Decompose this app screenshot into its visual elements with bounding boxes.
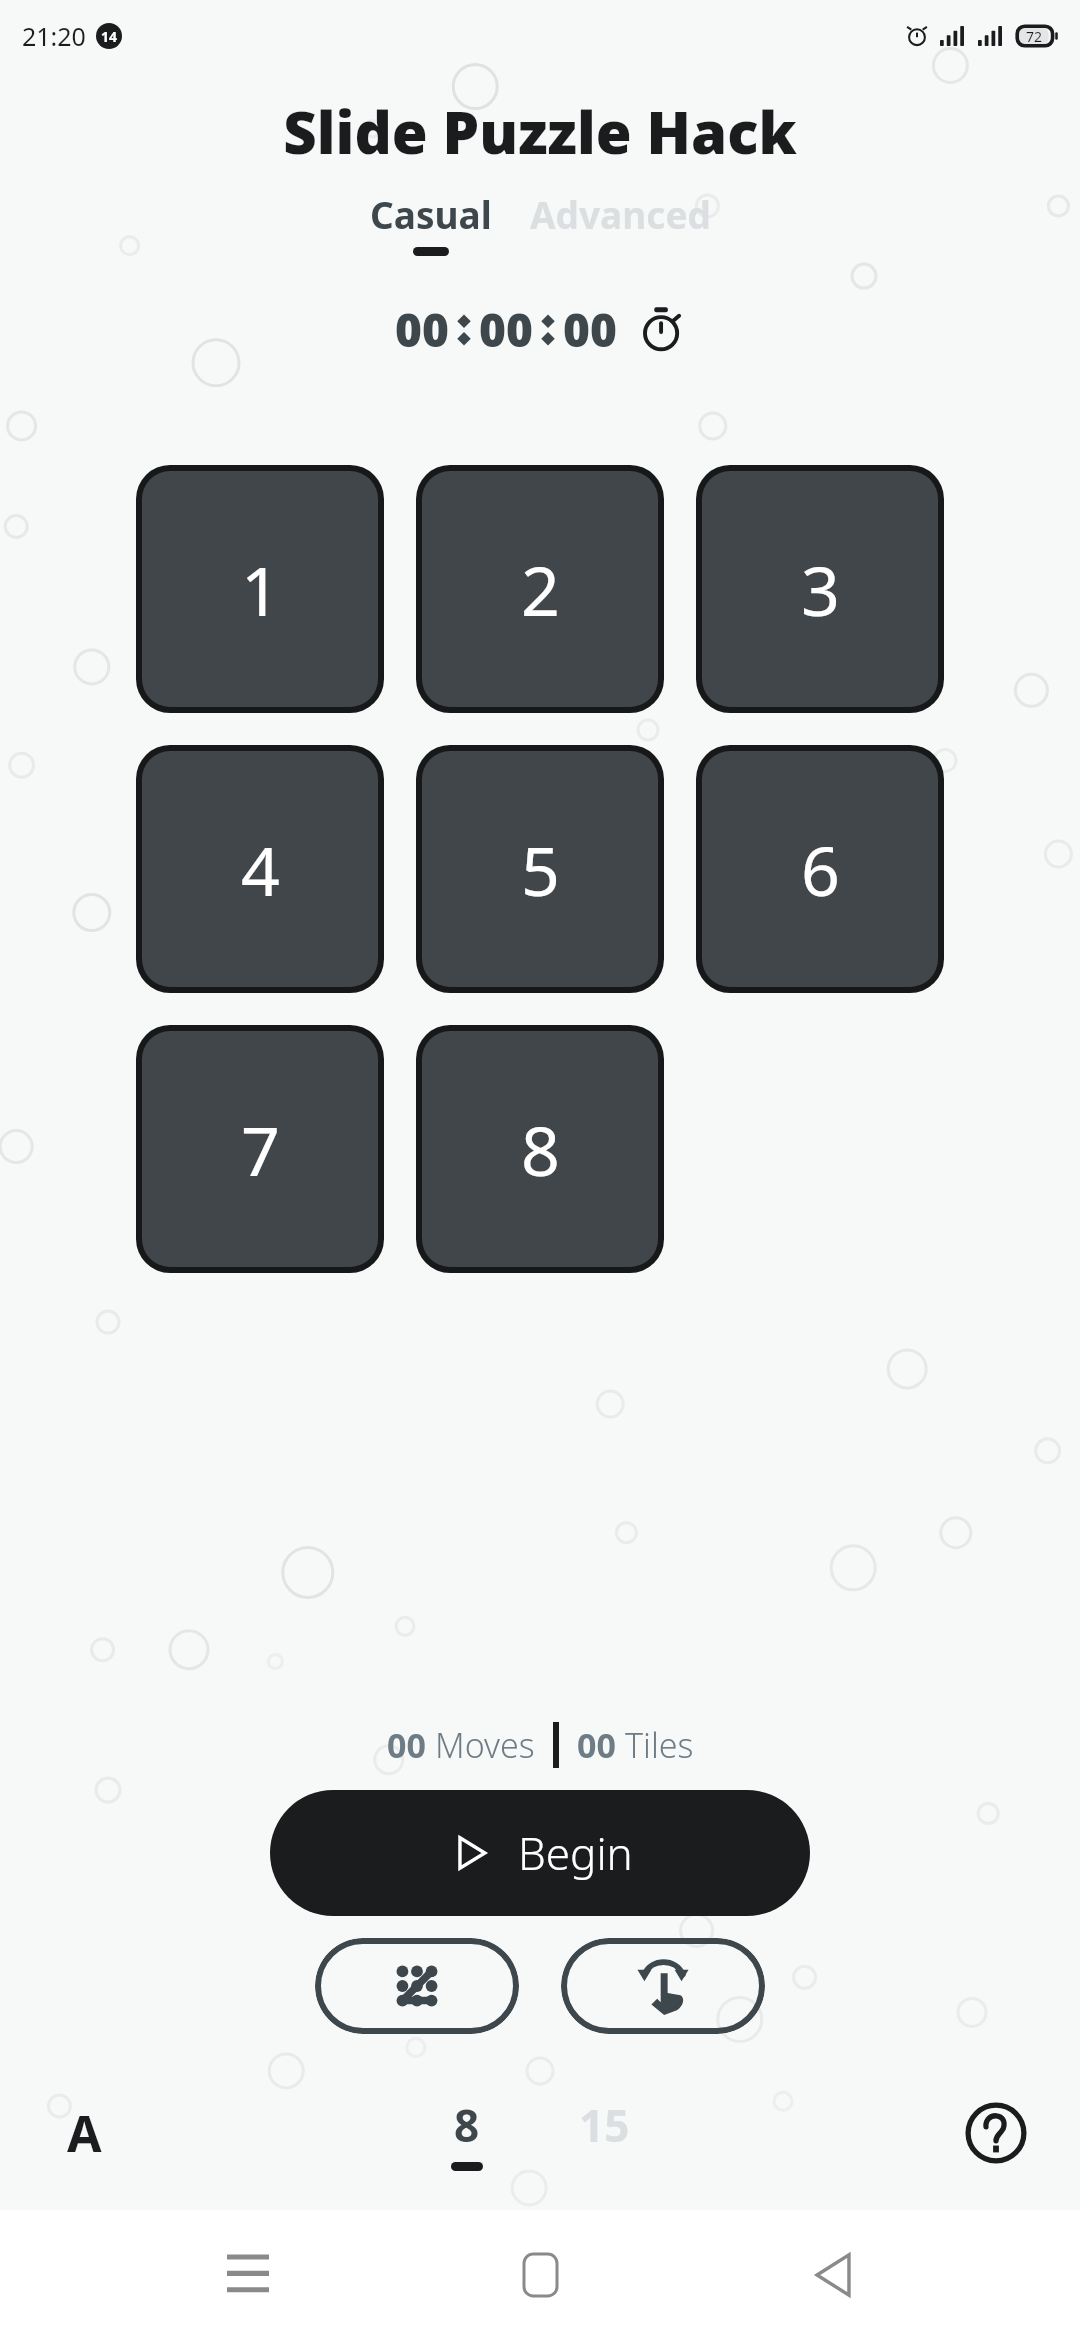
button[interactable]: 2 [422, 471, 658, 707]
staticText: 15 [579, 2095, 630, 2155]
button[interactable]: Recents [203, 2230, 293, 2320]
staticText: 00 [479, 298, 533, 361]
button[interactable]: Swipe mode [561, 1938, 765, 2034]
staticText: Begin [518, 1823, 633, 1883]
button[interactable]: 6 [702, 751, 938, 987]
button[interactable]: 7 [142, 1031, 378, 1267]
button[interactable]: Casual [364, 189, 498, 256]
staticText: 7 [241, 1103, 280, 1196]
staticText: Advanced [530, 189, 711, 239]
button[interactable]: 5 [422, 751, 658, 987]
button[interactable]: 15 [561, 2095, 648, 2171]
staticText: 72 [1026, 27, 1043, 46]
button[interactable]: Help [952, 2089, 1040, 2177]
staticText: 3 [801, 543, 840, 636]
button[interactable]: Begin [270, 1790, 810, 1916]
staticText: 8 [521, 1103, 560, 1196]
staticText: 00 [577, 1722, 616, 1768]
button[interactable]: Back [788, 2230, 878, 2320]
staticText: 21:20 [22, 19, 86, 53]
staticText: A [67, 2099, 102, 2167]
staticText: Moves [435, 1722, 535, 1768]
staticText: Slide Puzzle Hack [0, 92, 1080, 171]
staticText: 00 [387, 1722, 426, 1768]
staticText: 2 [521, 543, 560, 636]
staticText: 00 [563, 298, 617, 361]
staticText: 4 [241, 823, 280, 916]
staticText: 1 [241, 543, 280, 636]
staticText: 00 [395, 298, 449, 361]
button[interactable]: 1 [142, 471, 378, 707]
staticText: 8 [454, 2095, 480, 2155]
staticText: 6 [801, 823, 840, 916]
button[interactable]: Advanced [524, 189, 717, 256]
staticText: 5 [521, 823, 560, 916]
staticText: Tiles [625, 1722, 694, 1768]
staticText: Casual [370, 189, 492, 239]
staticText: 14 [101, 27, 118, 46]
button[interactable]: 8 [422, 1031, 658, 1267]
button[interactable]: 8 [433, 2095, 501, 2171]
button[interactable]: 4 [142, 751, 378, 987]
button[interactable]: Shuffle [315, 1938, 519, 2034]
button[interactable]: Alphabet mode [40, 2089, 128, 2177]
button[interactable]: 3 [702, 471, 938, 707]
button[interactable]: Home [495, 2230, 585, 2320]
